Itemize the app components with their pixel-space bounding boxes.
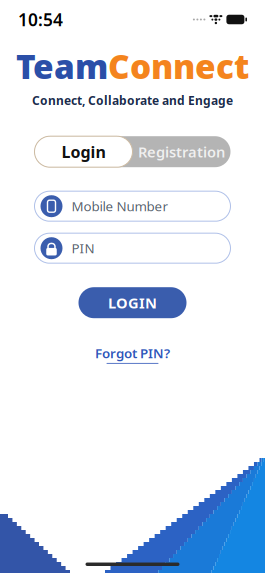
staticText: Login bbox=[61, 141, 105, 162]
button[interactable]: Login bbox=[34, 136, 132, 167]
staticText: Mobile Number bbox=[71, 197, 168, 215]
staticText: PIN bbox=[71, 239, 94, 257]
staticText: 10:54 bbox=[18, 8, 63, 31]
staticText: Connect bbox=[108, 44, 249, 88]
staticText: Forgot PIN? bbox=[95, 344, 170, 362]
button[interactable]: Registration bbox=[132, 136, 230, 167]
staticText: Registration bbox=[138, 142, 225, 161]
staticText: Team bbox=[16, 44, 108, 88]
staticText: Connect, Collaborate and Engage bbox=[32, 92, 233, 108]
button[interactable]: Mobile Number bbox=[34, 191, 230, 221]
staticText: LOGIN bbox=[108, 293, 157, 312]
button[interactable]: Forgot PIN? bbox=[95, 344, 170, 364]
button[interactable]: LOGIN bbox=[78, 287, 186, 318]
button[interactable]: PIN bbox=[34, 233, 230, 263]
